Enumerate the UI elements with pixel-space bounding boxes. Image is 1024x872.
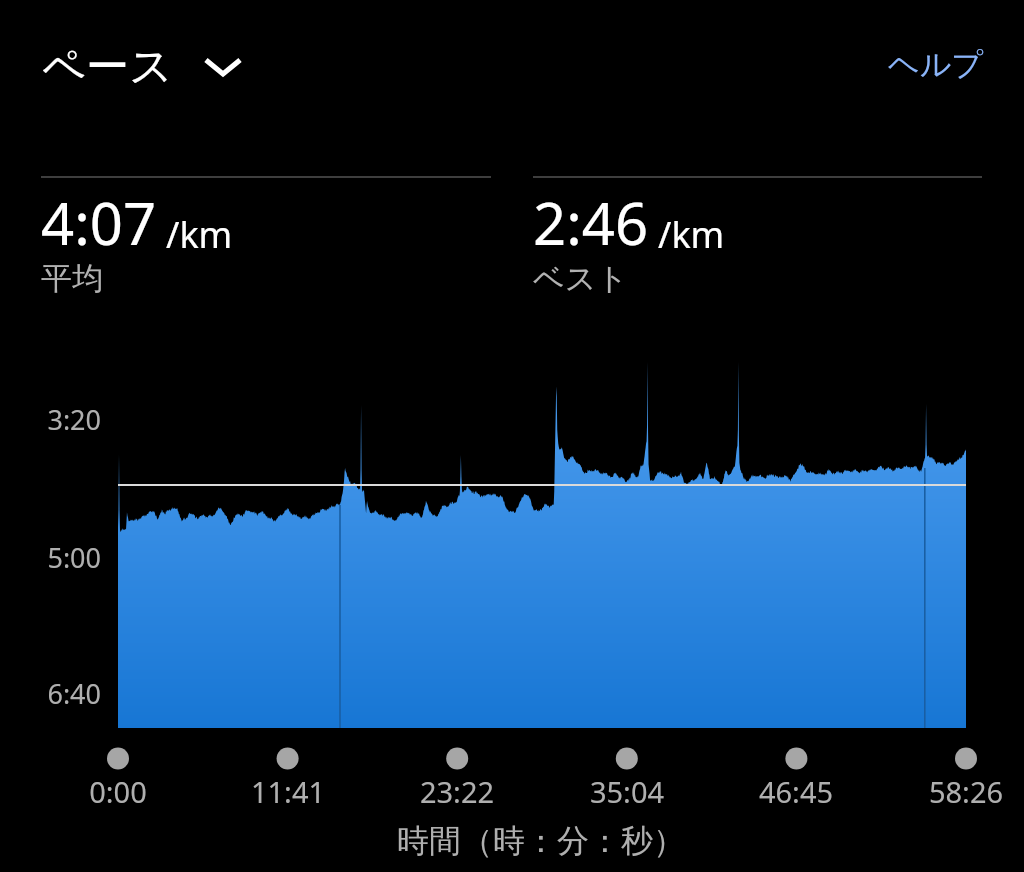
staticText: 4:07 bbox=[41, 183, 157, 262]
staticText: 23:22 bbox=[377, 772, 537, 811]
staticText: 5:00 bbox=[2, 539, 101, 576]
staticText: 46:45 bbox=[716, 772, 876, 811]
button[interactable]: 4:07 bbox=[41, 172, 491, 302]
staticText: 平均 bbox=[41, 259, 103, 298]
staticText: ヘルプ bbox=[888, 45, 984, 84]
staticText: 0:00 bbox=[38, 772, 198, 811]
staticText: 6:40 bbox=[2, 675, 101, 712]
staticText: 3:20 bbox=[2, 401, 101, 438]
button[interactable]: ペース metric, change bbox=[26, 18, 263, 116]
button[interactable]: ヘルプ bbox=[868, 25, 1004, 104]
button[interactable]: 2:46 bbox=[533, 172, 982, 302]
staticText: 2:46 bbox=[533, 183, 649, 262]
staticText: 時間（時：分：秒） bbox=[341, 821, 741, 861]
staticText: /km bbox=[166, 210, 233, 259]
other: Change metric bbox=[199, 43, 247, 91]
staticText: ペース bbox=[42, 40, 174, 94]
staticText: 11:41 bbox=[208, 772, 368, 811]
staticText: /km bbox=[658, 210, 725, 259]
button[interactable]: Pace over time chart bbox=[118, 400, 966, 730]
staticText: 35:04 bbox=[547, 772, 707, 811]
staticText: ベスト bbox=[533, 259, 629, 298]
staticText: 58:26 bbox=[886, 772, 1024, 811]
